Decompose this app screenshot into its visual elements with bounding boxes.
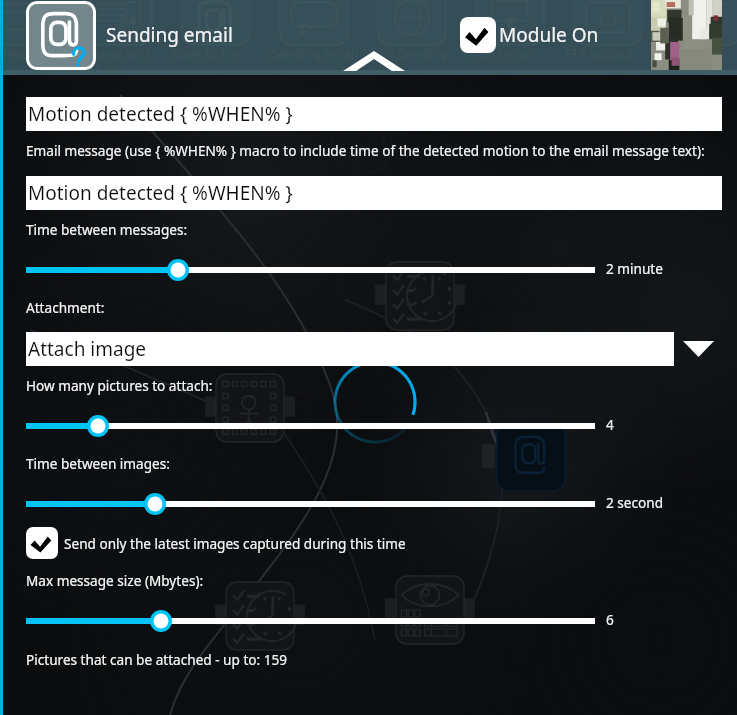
button[interactable]: Slider 2 minute: [0, 0, 737, 715]
staticText: 2 minute: [606, 259, 663, 278]
staticText: Preview: [663, 44, 711, 62]
button[interactable]: Attach image: [26, 332, 714, 366]
staticText: Pictures that can be attached - up to: 1…: [26, 650, 288, 669]
staticText: Module On: [499, 22, 599, 48]
button[interactable]: Send only the latest images captured dur…: [26, 527, 406, 559]
staticText: 6: [606, 610, 614, 629]
staticText: Max message size (Mbytes):: [26, 571, 204, 590]
staticText: Web server: [467, 44, 536, 62]
button[interactable]: Motion detected { %WHEN% }: [26, 176, 722, 210]
staticText: Sending email: [106, 22, 233, 48]
staticText: Time between messages:: [26, 220, 188, 239]
staticText: Attachment:: [26, 298, 105, 317]
button[interactable]: Expand module list: [343, 51, 405, 71]
button[interactable]: Sending email module help: [26, 1, 96, 70]
staticText: Preview and Archive: [75, 44, 149, 75]
staticText: Preview: [0, 44, 25, 62]
staticText: Save to file: [173, 44, 240, 62]
staticText: Motion detected { %WHEN% }: [28, 101, 293, 127]
staticText: Attach image: [28, 336, 147, 362]
staticText: Motion detected { %WHEN% }: [28, 180, 293, 206]
staticText: 4: [606, 415, 614, 434]
other: Open dropdown: [683, 341, 714, 357]
staticText: How many pictures to attach:: [26, 376, 213, 395]
staticText: 2 second: [606, 493, 663, 512]
staticText: Sms Sending: [369, 44, 448, 62]
staticText: Email message (use { %WHEN% } macro to i…: [26, 141, 705, 160]
button[interactable]: Slider 6: [0, 0, 737, 715]
button[interactable]: Camera preview: [651, 0, 722, 70]
button[interactable]: Motion detected { %WHEN% }: [26, 97, 722, 131]
staticText: Time between images:: [26, 454, 170, 473]
button[interactable]: Slider 4: [0, 0, 737, 715]
button[interactable]: Module On: [460, 17, 599, 53]
staticText: Send only the latest images captured dur…: [64, 534, 406, 553]
button[interactable]: Slider 2 second: [0, 0, 737, 715]
